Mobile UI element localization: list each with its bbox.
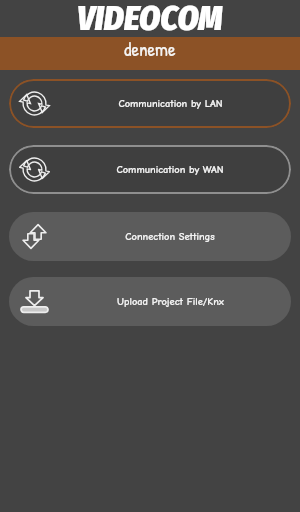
- staticText: VIDEOCOM: [77, 0, 223, 35]
- staticText: Connection Settings: [125, 231, 215, 243]
- staticText: Communication by WAN: [116, 164, 224, 176]
- staticText: Upload Project File/Knx: [117, 296, 224, 308]
- button[interactable]: Upload Project File/Knx: [9, 277, 291, 326]
- button[interactable]: Communication by WAN: [9, 145, 291, 194]
- button[interactable]: Connection Settings: [9, 212, 291, 261]
- staticText: deneme: [124, 36, 176, 62]
- staticText: Communication by LAN: [118, 98, 223, 110]
- button[interactable]: Communication by LAN: [9, 79, 291, 128]
